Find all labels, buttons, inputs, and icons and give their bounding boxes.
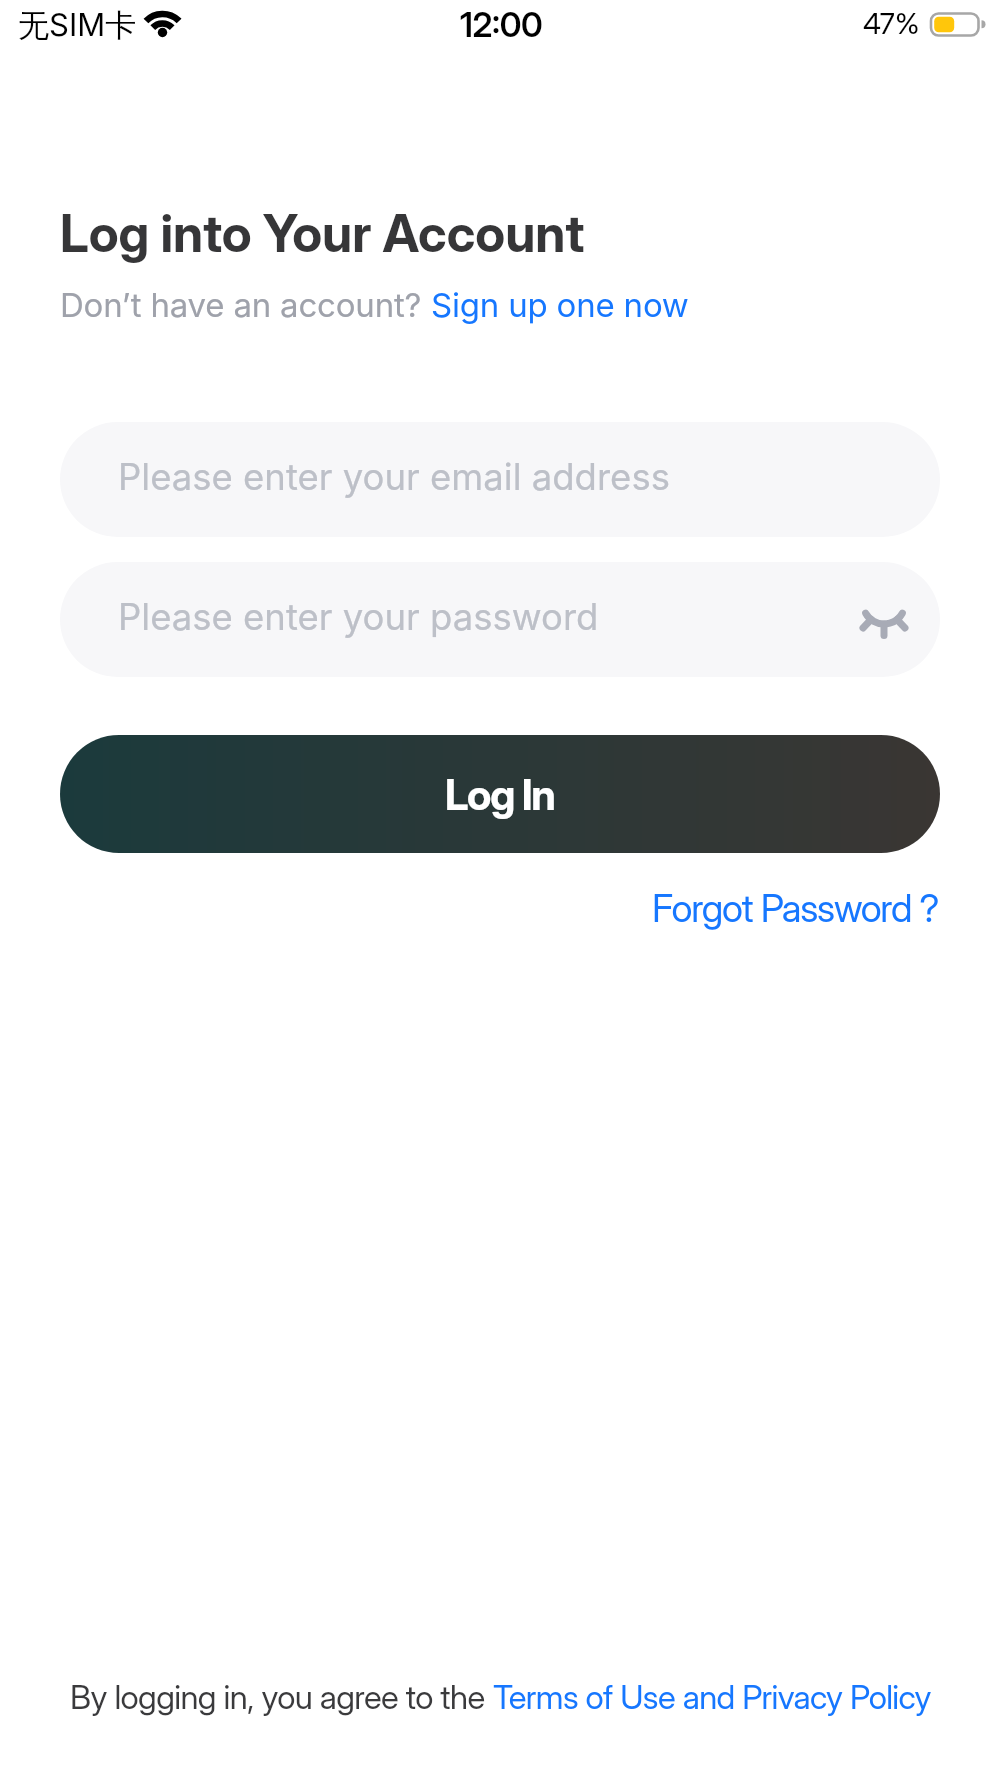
staticText: 12:00 (460, 4, 543, 45)
staticText: Please enter your password (118, 595, 599, 639)
button[interactable] (854, 588, 914, 648)
button[interactable]: Forgot Password ? (652, 885, 939, 931)
staticText: By logging in, you agree to the (70, 1677, 493, 1717)
button[interactable]: Sign up one now (431, 285, 689, 325)
staticText: Log In (445, 769, 555, 820)
staticText: Don’t have an account? (60, 285, 431, 325)
staticText: Please enter your email address (118, 455, 670, 499)
button[interactable]: Please enter your email address (60, 422, 940, 537)
staticText: 无SIM卡 (18, 6, 137, 45)
button[interactable]: Log In (60, 735, 940, 853)
staticText: 47% (863, 6, 920, 41)
staticText: Log into Your Account (60, 202, 585, 264)
button[interactable]: Please enter your password (60, 562, 940, 677)
button[interactable]: Terms of Use and Privacy Policy (493, 1677, 931, 1717)
